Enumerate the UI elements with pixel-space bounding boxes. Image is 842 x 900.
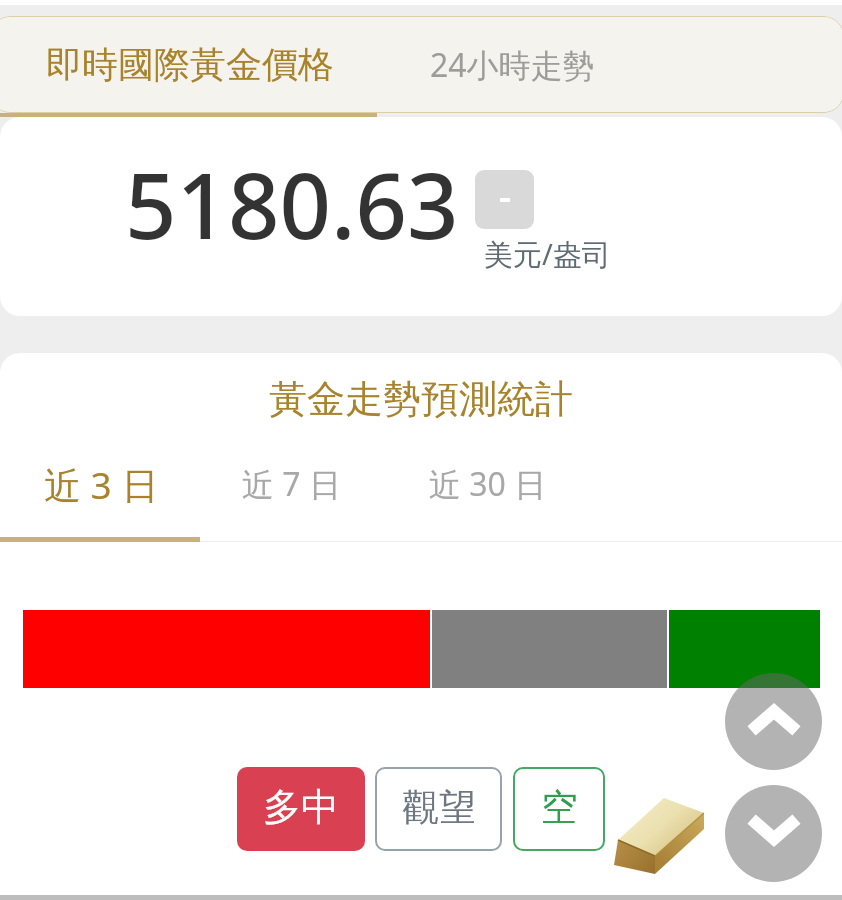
button[interactable]: 24小時走勢 (378, 16, 646, 113)
staticText: 即時國際黃金價格 (46, 42, 334, 87)
button[interactable]: Scroll down (725, 785, 822, 882)
staticText: 多中 (263, 783, 339, 831)
button[interactable]: 多中 (237, 767, 365, 851)
button[interactable]: 近 3 日 (0, 455, 196, 513)
button[interactable]: Scroll up (725, 673, 822, 770)
staticText: 黃金走勢預測統計 (0, 375, 842, 423)
staticText: 近 7 日 (242, 462, 341, 506)
staticText: 美元/盎司 (484, 234, 611, 274)
staticText: 近 3 日 (44, 459, 159, 510)
staticText: 近 30 日 (429, 462, 547, 506)
button[interactable]: 即時國際黃金價格 (1, 16, 378, 113)
staticText: 空 (541, 784, 578, 831)
staticText: 觀望 (402, 784, 476, 831)
button[interactable]: 空 (513, 767, 605, 851)
staticText: 24小時走勢 (430, 43, 595, 87)
staticText: 5180.63 (125, 143, 459, 266)
button[interactable]: 近 7 日 (196, 455, 387, 513)
button[interactable]: 觀望 (375, 767, 502, 851)
button[interactable]: 近 30 日 (387, 455, 582, 513)
